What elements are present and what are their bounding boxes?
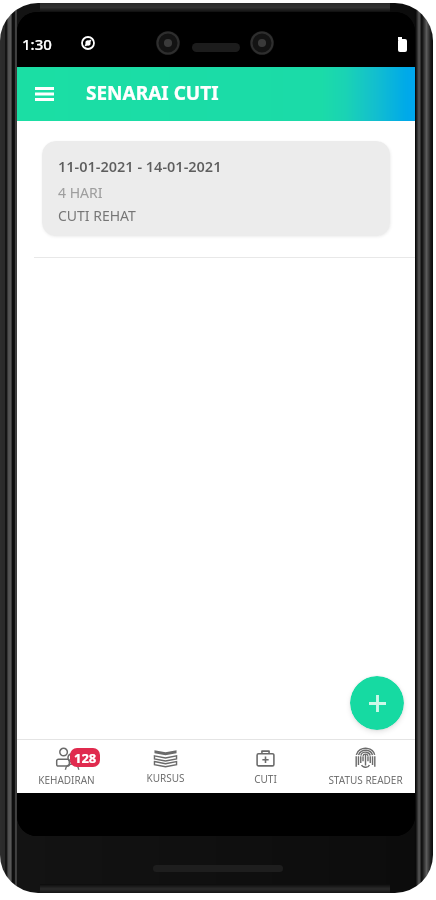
staticText: SENARAI CUTI [86, 80, 219, 106]
staticText: CUTI [254, 772, 277, 786]
staticText: CUTI REHAT [58, 206, 136, 225]
button[interactable]: 128 [17, 740, 116, 793]
staticText: KURSUS [146, 771, 185, 785]
staticText: 4 HARI [58, 183, 103, 202]
button[interactable]: KURSUS [116, 740, 215, 793]
staticText: KEHADIRAN [38, 773, 95, 787]
button[interactable]: 11-01-2021 - 14-01-2021 [42, 141, 390, 236]
staticText: 1:30 [22, 34, 52, 54]
button[interactable]: Menu [24, 74, 64, 114]
staticText: STATUS READER [328, 773, 403, 787]
button[interactable]: CUTI [215, 740, 315, 793]
staticText: 128 [74, 749, 97, 767]
button[interactable]: STATUS READER [315, 740, 415, 793]
staticText: 11-01-2021 - 14-01-2021 [58, 156, 222, 176]
button[interactable]: Add [350, 676, 404, 730]
